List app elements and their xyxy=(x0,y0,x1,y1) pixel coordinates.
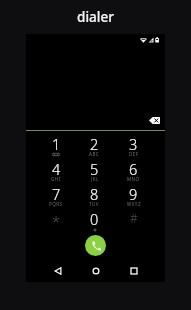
staticText: 6 xyxy=(129,159,138,179)
staticText: 8 xyxy=(90,184,99,204)
button[interactable]: 8 xyxy=(75,184,114,209)
staticText: 9 xyxy=(129,184,138,204)
staticText: TUV xyxy=(89,201,100,207)
staticText: dialer xyxy=(0,8,191,26)
button[interactable]: 4 xyxy=(37,159,75,184)
button[interactable]: * xyxy=(37,209,75,234)
button[interactable]: 6 xyxy=(114,159,153,184)
staticText: WXYZ xyxy=(127,201,141,207)
button[interactable]: 1 xyxy=(37,134,75,159)
staticText: ABC xyxy=(89,151,100,157)
button[interactable]: 9 xyxy=(114,184,153,209)
staticText: 5 xyxy=(90,159,99,179)
button[interactable]: Recents xyxy=(115,261,153,280)
staticText: # xyxy=(130,210,138,226)
staticText: JKL xyxy=(91,176,99,182)
button[interactable]: Back xyxy=(39,261,77,280)
staticText: * xyxy=(52,211,61,231)
staticText: 3 xyxy=(129,134,138,154)
button[interactable]: 2 xyxy=(75,134,114,159)
staticText: 7 xyxy=(52,184,61,204)
staticText: MNO xyxy=(127,176,140,182)
button[interactable]: # xyxy=(114,209,153,234)
button[interactable]: Backspace xyxy=(146,112,163,128)
button[interactable]: Home xyxy=(77,261,115,280)
button[interactable]: 3 xyxy=(114,134,153,159)
button[interactable]: 5 xyxy=(75,159,114,184)
staticText: DEF xyxy=(129,151,139,157)
button[interactable]: Call xyxy=(85,235,106,256)
staticText: GHI xyxy=(51,176,61,182)
staticText: 1 xyxy=(52,134,61,154)
staticText: 0 xyxy=(90,209,99,229)
button[interactable]: 0 xyxy=(75,209,114,234)
staticText: 2 xyxy=(90,134,99,154)
button[interactable]: 7 xyxy=(37,184,75,209)
staticText: PQRS xyxy=(49,201,63,207)
staticText: 4 xyxy=(52,159,61,179)
